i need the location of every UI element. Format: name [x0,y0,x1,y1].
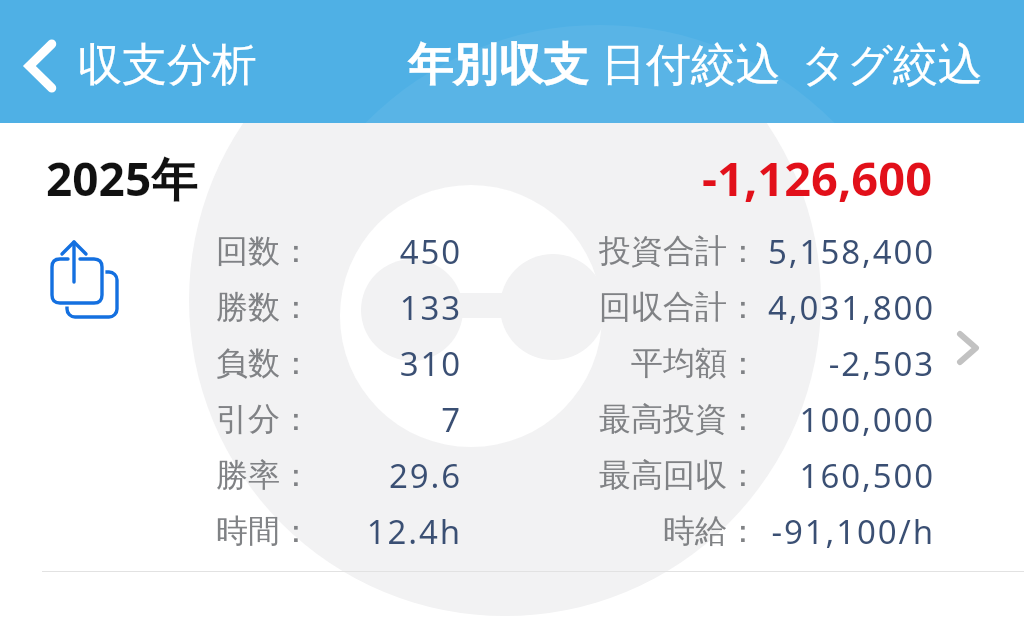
staticText: 100,000 [759,397,935,442]
button[interactable]: 収支分析 [77,37,257,94]
staticText: 4,031,800 [759,285,935,330]
staticText: 5,158,400 [759,229,935,274]
button[interactable]: 年別収支 [408,37,588,94]
staticText: 勝数： [210,287,312,327]
staticText: 引分： [210,399,312,439]
staticText: 回数： [210,231,312,271]
staticText: -91,100/h [759,509,935,554]
button[interactable]: 日付絞込 [601,37,781,94]
staticText: 最高投資： [462,399,759,439]
staticText: 450 [312,229,462,274]
staticText: 時間： [210,511,312,551]
staticText: 負数： [210,343,312,383]
staticText: 2025年 [46,147,198,210]
staticText: 回収合計： [462,287,759,327]
staticText: 時給： [462,511,759,551]
button[interactable]: タグ絞込 [801,37,984,94]
staticText: 310 [312,341,462,386]
staticText: 最高回収： [462,455,759,495]
staticText: 133 [312,285,462,330]
staticText: -1,126,600 [702,146,933,210]
staticText: 平均額： [462,343,759,383]
staticText: 投資合計： [462,231,759,271]
staticText: -2,503 [759,341,935,386]
staticText: 7 [312,397,462,442]
staticText: 勝率： [210,455,312,495]
button[interactable]: Back [8,34,72,98]
button[interactable]: 2025年 [0,123,1024,559]
staticText: 12.4h [312,509,462,554]
button[interactable]: Share [50,239,120,321]
staticText: 160,500 [759,453,935,498]
staticText: 29.6 [312,453,462,498]
